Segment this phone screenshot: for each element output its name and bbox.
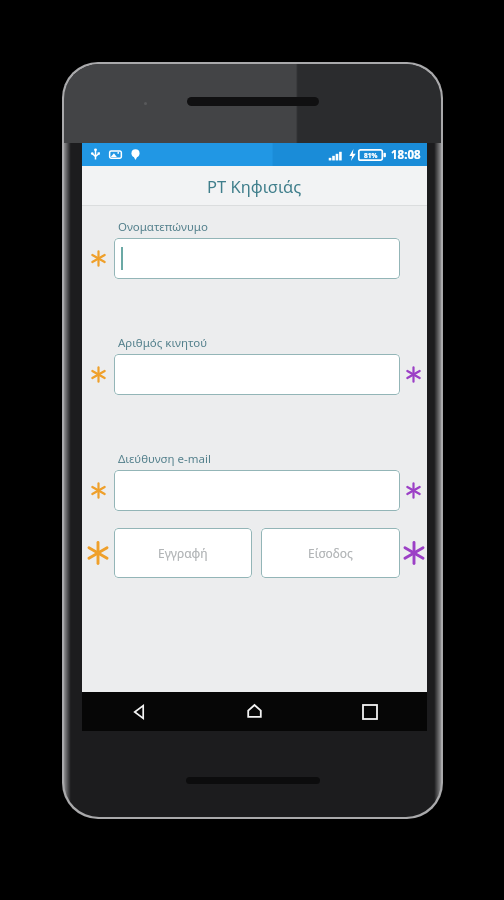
button[interactable]: Είσοδος	[261, 528, 400, 578]
staticText: Ονοματεπώνυμο	[118, 219, 208, 235]
staticText: Εγγραφή	[158, 545, 208, 561]
button[interactable]: Εγγραφή	[114, 528, 252, 578]
button[interactable]	[114, 470, 400, 511]
button[interactable]: Home	[197, 692, 312, 731]
button[interactable]: Back	[82, 692, 197, 731]
button[interactable]: Recent apps	[312, 692, 427, 731]
staticText: Είσοδος	[308, 545, 353, 561]
button[interactable]	[114, 238, 400, 279]
staticText: Διεύθυνση e-mail	[118, 451, 211, 467]
staticText: PT Κηφισιάς	[207, 175, 302, 197]
staticText: 81%	[364, 151, 378, 160]
button[interactable]	[114, 354, 400, 395]
staticText: Αριθμός κινητού	[118, 335, 208, 351]
staticText: 18:08	[391, 147, 421, 163]
